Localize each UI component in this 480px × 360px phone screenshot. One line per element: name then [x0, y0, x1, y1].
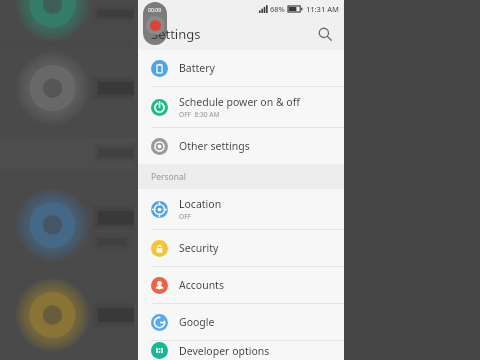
button[interactable]: Security: [138, 230, 344, 266]
button[interactable]: Screen recorder: [143, 2, 167, 45]
button[interactable]: Location: [138, 189, 344, 229]
staticText: Location: [179, 197, 222, 211]
staticText: Settings: [151, 25, 201, 43]
staticText: 00:09: [148, 6, 162, 13]
staticText: OFF: [179, 212, 191, 221]
staticText: Schedule power on & off: [179, 95, 300, 109]
staticText: Personal: [151, 171, 186, 183]
button[interactable]: Search: [312, 21, 338, 47]
staticText: Battery: [179, 61, 215, 75]
button[interactable]: Battery: [138, 50, 344, 86]
staticText: Developer options: [179, 344, 270, 358]
staticText: 11:31 AM: [306, 4, 339, 14]
button[interactable]: Google: [138, 304, 344, 340]
button[interactable]: Other settings: [138, 128, 344, 164]
staticText: OFF 8:30 AM: [179, 110, 220, 119]
staticText: Security: [179, 241, 219, 255]
button[interactable]: Developer options: [138, 341, 344, 360]
staticText: Accounts: [179, 278, 224, 292]
button[interactable]: Accounts: [138, 267, 344, 303]
staticText: Other settings: [179, 139, 250, 153]
button[interactable]: Schedule power on & off: [138, 87, 344, 127]
staticText: 68%: [270, 4, 285, 14]
staticText: Google: [179, 315, 215, 329]
